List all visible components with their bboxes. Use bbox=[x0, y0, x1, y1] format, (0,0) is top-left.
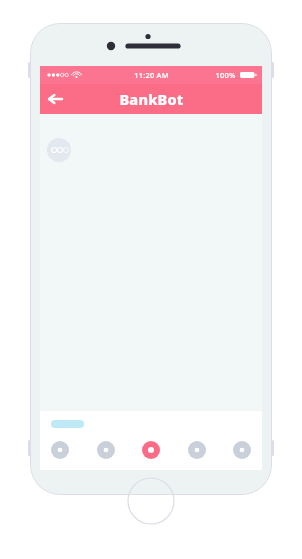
button[interactable]: Quick reply bbox=[51, 420, 84, 428]
button[interactable]: Chat bbox=[139, 438, 163, 462]
staticText: 100% bbox=[215, 70, 236, 80]
button[interactable]: Accounts bbox=[48, 438, 72, 462]
button[interactable]: Cards bbox=[185, 438, 209, 462]
button[interactable]: Home bbox=[127, 477, 175, 525]
button[interactable]: More bbox=[230, 438, 254, 462]
staticText: 11:20 AM bbox=[134, 70, 169, 80]
button[interactable]: Back bbox=[40, 84, 70, 114]
staticText: BankBot bbox=[119, 89, 184, 109]
button[interactable]: Transfer bbox=[94, 438, 118, 462]
